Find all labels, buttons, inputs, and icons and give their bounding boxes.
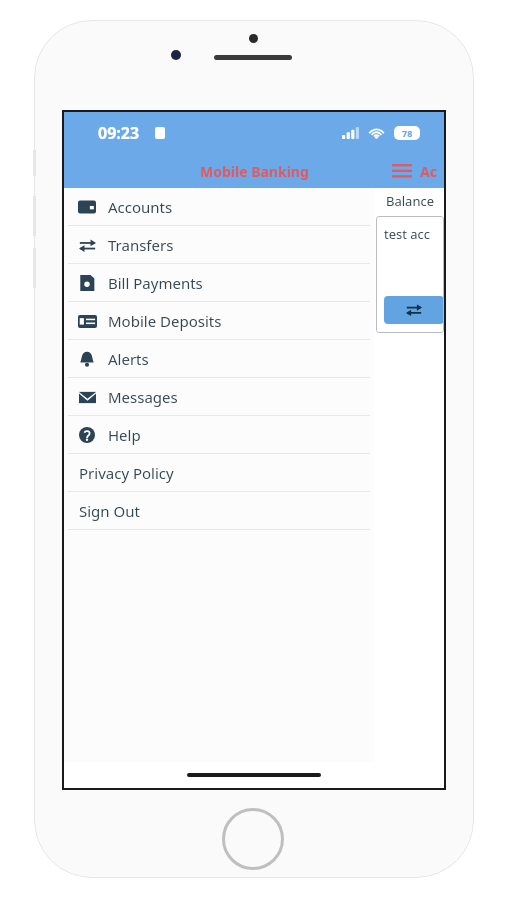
- staticText: Alerts: [108, 349, 149, 369]
- button[interactable]: Ac: [417, 162, 440, 181]
- staticText: Sign Out: [79, 501, 140, 521]
- staticText: Transfers: [108, 235, 174, 255]
- button[interactable]: Menu: [387, 158, 417, 184]
- button[interactable]: Accounts: [64, 188, 374, 225]
- staticText: Accounts: [108, 197, 173, 217]
- button[interactable]: Mobile Deposits: [64, 302, 374, 339]
- staticText: Help: [108, 425, 141, 445]
- button[interactable]: Alerts: [64, 340, 374, 377]
- button[interactable]: Transfer: [384, 296, 444, 324]
- button[interactable]: Bill Payments: [64, 264, 374, 301]
- staticText: Messages: [108, 387, 178, 407]
- staticText: Mobile Deposits: [108, 311, 222, 331]
- staticText: 09:23: [98, 122, 140, 144]
- button[interactable]: Transfers: [64, 226, 374, 263]
- button[interactable]: test acc: [376, 216, 444, 333]
- button[interactable]: Privacy Policy: [64, 454, 374, 491]
- button[interactable]: Sign Out: [64, 492, 374, 529]
- staticText: Balance: [376, 192, 444, 210]
- staticText: Privacy Policy: [79, 463, 174, 483]
- button[interactable]: Messages: [64, 378, 374, 415]
- staticText: Mobile Banking: [200, 162, 309, 181]
- button[interactable]: Help: [64, 416, 374, 453]
- staticText: Bill Payments: [108, 273, 203, 293]
- staticText: test acc: [384, 225, 431, 243]
- staticText: 78: [402, 127, 413, 139]
